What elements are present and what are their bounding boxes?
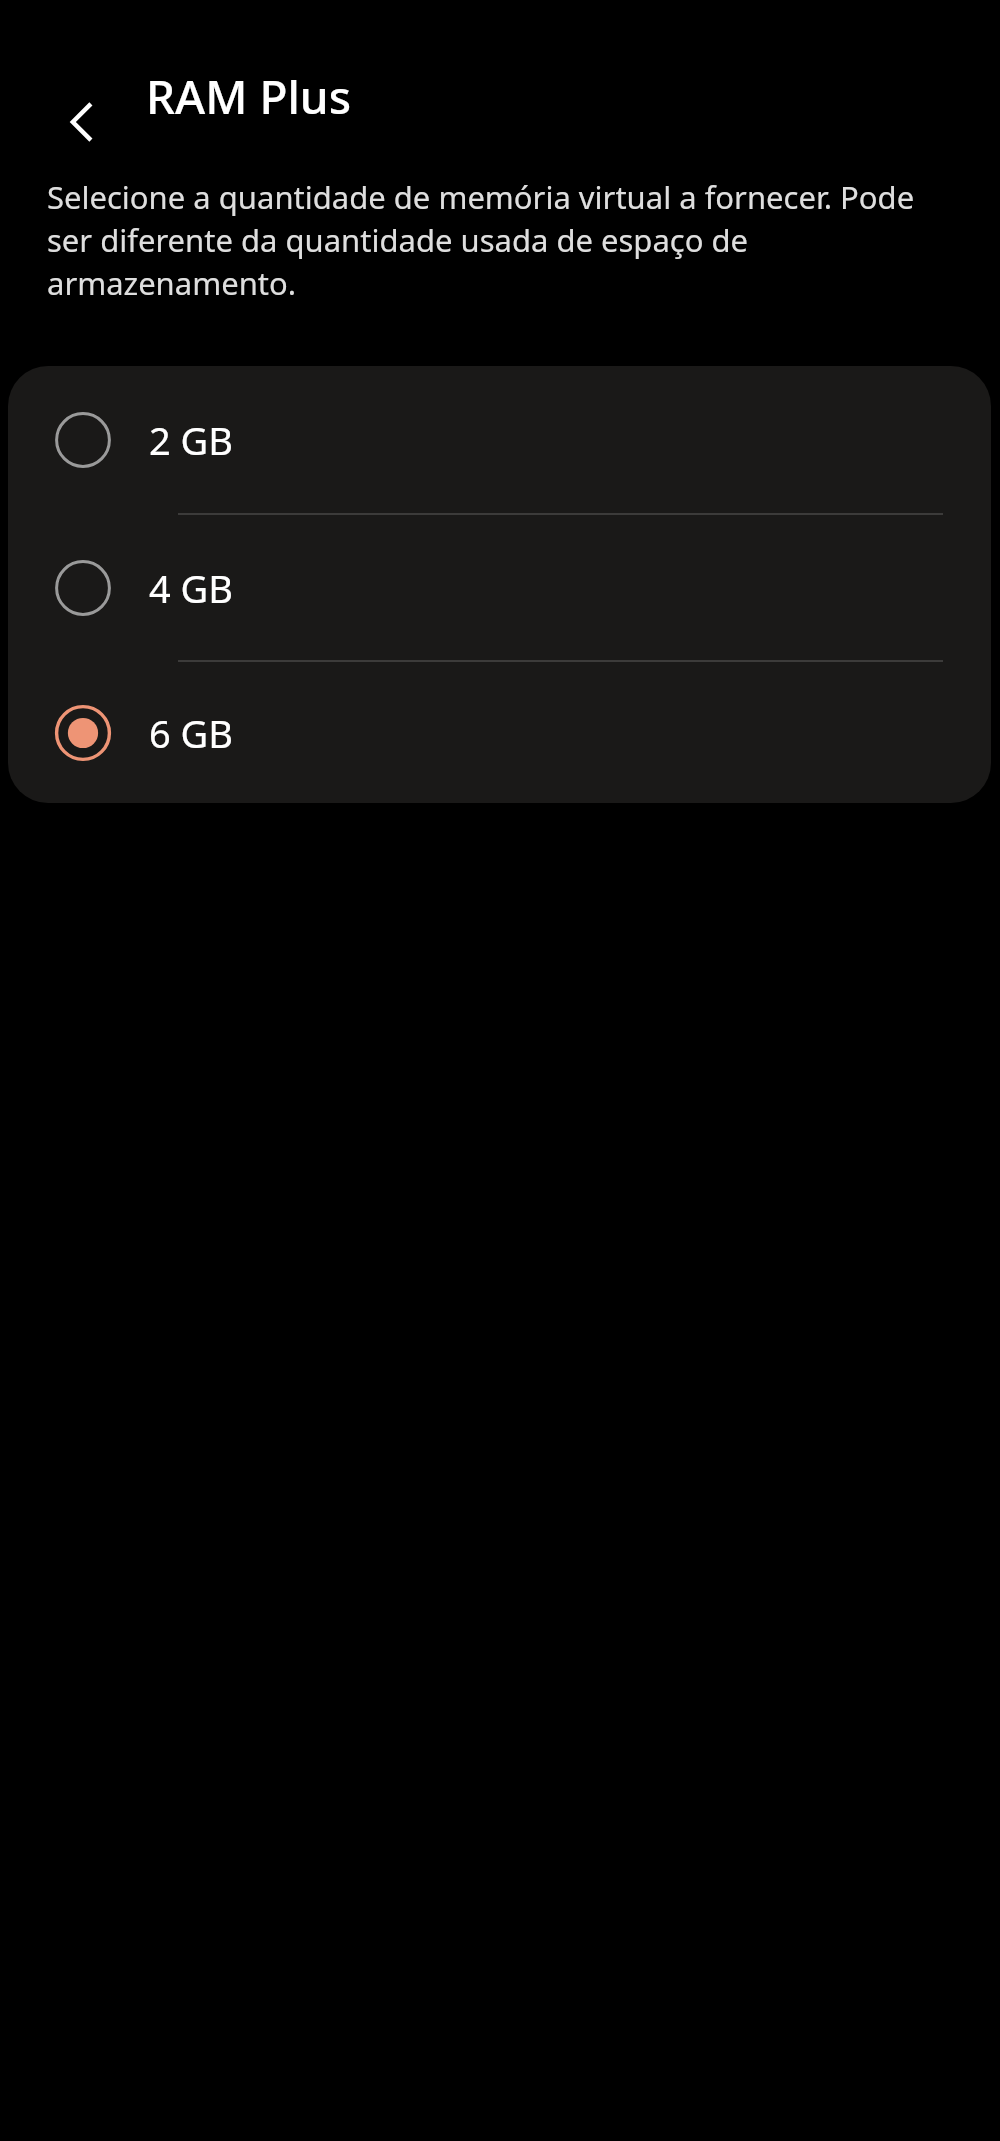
staticText: 4 GB — [149, 562, 233, 614]
staticText: 2 GB — [149, 414, 233, 466]
staticText: 6 GB — [149, 707, 233, 759]
button[interactable]: 2 GB — [8, 366, 991, 513]
button[interactable]: Navigate up — [42, 82, 122, 162]
button[interactable]: 4 GB — [8, 515, 991, 660]
button[interactable]: 6 GB — [8, 662, 991, 803]
staticText: RAM Plus — [146, 65, 352, 128]
staticText: Selecione a quantidade de memória virtua… — [47, 175, 962, 304]
